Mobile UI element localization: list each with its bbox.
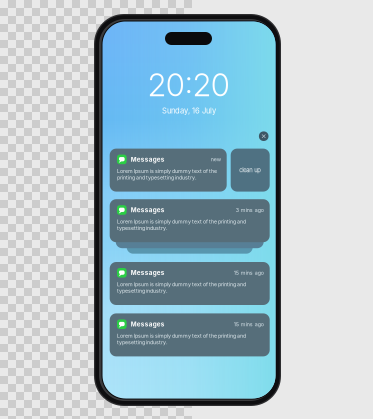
staticText: 3 mins ago (236, 207, 264, 213)
staticText: typesetting industry. (117, 288, 168, 294)
button[interactable]: clean up (231, 149, 270, 192)
staticText: Sunday, 16 July (162, 106, 216, 115)
staticText: 20:20 (148, 66, 230, 104)
staticText: Lorem Ipsum is simply dummy text of the (117, 168, 217, 174)
staticText: Messages (131, 156, 165, 163)
staticText: Lorem Ipsum is simply dummy text of the … (117, 218, 246, 225)
staticText: Messages (131, 269, 165, 277)
button[interactable]: Messages (110, 262, 270, 305)
staticText: Lorem Ipsum is simply dummy text of the … (117, 281, 246, 288)
staticText: Lorem Ipsum is simply dummy text of the … (117, 333, 246, 339)
staticText: typesetting industry. (117, 225, 168, 231)
button[interactable]: Messages (110, 149, 227, 192)
button[interactable]: Messages (110, 199, 270, 242)
staticText: printing and typesetting industry. (117, 174, 197, 181)
button[interactable]: Clear notifications (257, 129, 271, 143)
button[interactable]: Messages (110, 313, 270, 356)
staticText: 15 mins ago (234, 270, 264, 276)
staticText: new (211, 156, 221, 163)
staticText: 15 mins ago (234, 321, 264, 327)
staticText: Messages (131, 206, 165, 214)
staticText: clean up (239, 167, 261, 174)
staticText: typesetting industry. (117, 339, 168, 346)
staticText: Messages (131, 320, 165, 328)
